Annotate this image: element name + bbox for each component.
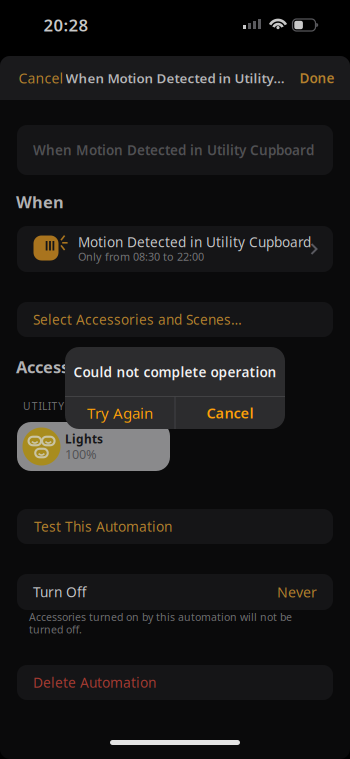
button[interactable]: Cancel bbox=[175, 397, 284, 429]
staticText: UTILITY CUPBOARD bbox=[23, 399, 128, 413]
staticText: When Motion Detected in Utility Cupboard bbox=[33, 141, 314, 159]
button[interactable]: Lights bbox=[17, 422, 170, 471]
staticText: Try Again bbox=[87, 403, 153, 423]
staticText: Cancel bbox=[18, 68, 63, 88]
staticText: Turn Off bbox=[33, 583, 86, 601]
button[interactable]: Done bbox=[293, 61, 341, 95]
staticText: Never bbox=[277, 582, 317, 602]
button[interactable]: Cancel bbox=[12, 61, 70, 95]
button[interactable]: Test This Automation bbox=[17, 509, 333, 544]
staticText: Test This Automation bbox=[34, 517, 172, 536]
button[interactable]: Motion Detected in Utility Cupboard bbox=[17, 226, 333, 272]
button[interactable]: Try Again bbox=[65, 397, 174, 429]
button[interactable]: Select Accessories and Scenes… bbox=[17, 302, 333, 337]
staticText: turned off. bbox=[29, 622, 82, 637]
staticText: Could not complete operation bbox=[73, 363, 276, 381]
button[interactable]: Turn Off bbox=[17, 574, 333, 610]
staticText: 20:28 bbox=[43, 14, 88, 36]
button[interactable]: Delete Automation bbox=[17, 665, 333, 700]
staticText: Only from 08:30 to 22:00 bbox=[78, 249, 204, 264]
staticText: Lights bbox=[65, 431, 103, 447]
staticText: 100% bbox=[65, 445, 97, 463]
staticText: When Motion Detected in Utility… bbox=[65, 69, 284, 87]
staticText: Done bbox=[299, 69, 334, 87]
staticText: Accessories turned on by this automation… bbox=[29, 610, 292, 624]
staticText: Cancel bbox=[206, 403, 253, 423]
staticText: When bbox=[16, 191, 64, 213]
staticText: Select Accessories and Scenes… bbox=[33, 310, 242, 329]
staticText: Accessories and Scenes bbox=[16, 356, 204, 378]
staticText: Motion Detected in Utility Cupboard bbox=[78, 233, 311, 251]
staticText: Delete Automation bbox=[33, 673, 156, 692]
